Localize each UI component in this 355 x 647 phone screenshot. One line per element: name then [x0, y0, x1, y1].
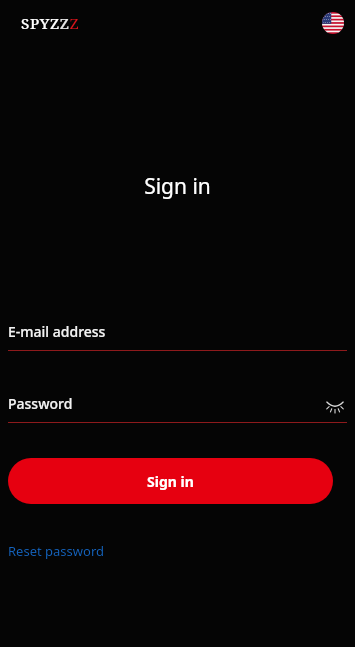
staticText: Sign in — [147, 472, 194, 491]
staticText: Password — [8, 394, 73, 413]
button[interactable]: SPYZZZ — [21, 13, 80, 33]
button[interactable]: Sign in — [8, 458, 333, 504]
staticText: E-mail address — [8, 322, 106, 341]
button[interactable]: Show password — [323, 392, 347, 416]
button[interactable]: Password — [8, 394, 347, 423]
staticText: Reset password — [8, 542, 104, 560]
staticText: Sign in — [0, 172, 355, 201]
button[interactable]: Reset password — [8, 542, 104, 560]
button[interactable]: Change language — [322, 12, 344, 34]
staticText: SPYZZZ — [21, 13, 80, 33]
button[interactable]: E-mail address — [8, 322, 347, 351]
